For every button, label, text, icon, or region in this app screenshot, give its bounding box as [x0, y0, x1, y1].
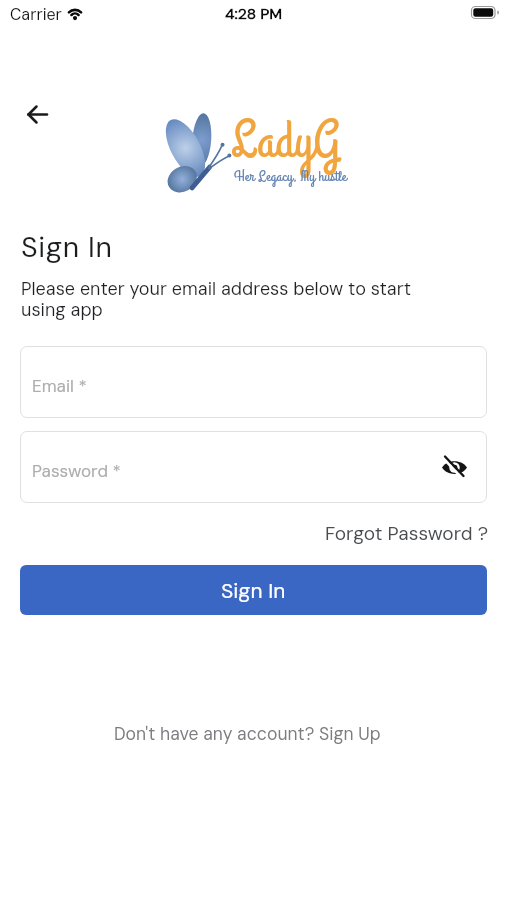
staticText: Her Legacy, My hustle	[234, 166, 347, 188]
staticText: Email *	[32, 375, 87, 397]
staticText: Password *	[32, 460, 121, 482]
button[interactable]	[442, 455, 467, 480]
button[interactable]: Email *	[20, 346, 487, 418]
staticText: 4:28 PM	[225, 4, 283, 24]
button[interactable]: Sign In	[20, 565, 487, 615]
button[interactable]: Forgot Password ?	[0, 521, 488, 546]
staticText: Please enter your email address below to…	[21, 277, 412, 322]
staticText: Sign In	[21, 229, 113, 266]
staticText: Carrier	[10, 4, 62, 25]
button[interactable]: Password *	[20, 431, 487, 503]
staticText: Don't have any account? Sign Up	[114, 723, 381, 746]
button[interactable]	[18, 95, 56, 133]
staticText: Sign In	[221, 577, 286, 604]
staticText: LadyG	[231, 107, 341, 178]
button[interactable]: Don't have any account? Sign Up	[114, 723, 381, 746]
